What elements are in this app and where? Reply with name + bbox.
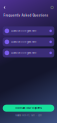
button[interactable]: Question title goes here <box>3 26 54 35</box>
button[interactable]: Search <box>49 5 55 10</box>
staticText: Contact Our Experts <box>15 107 41 110</box>
staticText: Question title goes here <box>11 40 36 43</box>
button[interactable]: Contact Our Experts <box>3 105 54 112</box>
button[interactable]: Question title goes here <box>3 37 54 46</box>
staticText: Question title goes here <box>11 29 36 32</box>
button[interactable]: Back <box>2 5 7 10</box>
button[interactable]: Question title goes here <box>3 48 54 57</box>
staticText: Frequently Asked Questions <box>3 14 48 17</box>
staticText: Question title goes here <box>11 51 36 54</box>
staticText: Available Mon-Fri, 9am - 6pm <box>15 114 42 117</box>
